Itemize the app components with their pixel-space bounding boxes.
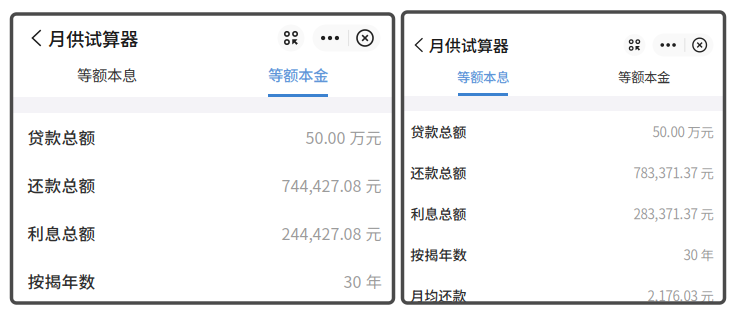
button[interactable]: 按揭年数 xyxy=(11,257,393,305)
button[interactable]: 利息总额 xyxy=(11,209,393,257)
staticText: 月供试算器 xyxy=(48,25,138,51)
button[interactable]: 等额本金 xyxy=(563,60,724,96)
staticText: 等额本金 xyxy=(268,63,328,86)
staticText: 30 年 xyxy=(343,269,381,293)
staticText: 月均还款 xyxy=(410,285,466,306)
staticText: 283,371.37 元 xyxy=(633,204,713,223)
staticText: 50.00 万元 xyxy=(305,125,381,149)
button[interactable]: 等额本息 xyxy=(11,55,202,97)
button[interactable]: 贷款总额 xyxy=(402,111,724,152)
button[interactable]: 月均还款 xyxy=(402,275,724,313)
staticText: 贷款总额 xyxy=(410,121,466,142)
button[interactable]: Mini program menu xyxy=(623,34,645,56)
staticText: 等额本息 xyxy=(457,67,509,86)
button[interactable]: Mini program menu xyxy=(277,24,304,51)
staticText: 利息总额 xyxy=(410,203,466,224)
staticText: 利息总额 xyxy=(27,221,95,245)
button[interactable]: 月供试算器 xyxy=(11,22,138,54)
staticText: 月供试算器 xyxy=(429,33,509,57)
button[interactable]: 贷款总额 xyxy=(11,113,393,161)
staticText: 744,427.08 元 xyxy=(281,173,381,197)
button[interactable]: 月供试算器 xyxy=(402,30,509,60)
staticText: 等额本息 xyxy=(77,63,137,86)
button[interactable]: 等额本金 xyxy=(202,55,393,97)
staticText: 贷款总额 xyxy=(27,125,95,149)
staticText: 2,176.03 元 xyxy=(647,286,713,305)
button[interactable]: 还款总额 xyxy=(11,161,393,209)
button[interactable]: Close xyxy=(349,24,381,51)
button[interactable]: More xyxy=(652,33,684,56)
button[interactable]: More xyxy=(312,24,348,51)
button[interactable]: 按揭年数 xyxy=(402,234,724,275)
staticText: 按揭年数 xyxy=(27,269,95,293)
staticText: 还款总额 xyxy=(410,162,466,183)
staticText: 按揭年数 xyxy=(410,244,466,265)
staticText: 783,371.37 元 xyxy=(633,163,713,182)
staticText: 50.00 万元 xyxy=(652,122,713,141)
button[interactable]: 利息总额 xyxy=(402,193,724,234)
staticText: 还款总额 xyxy=(27,173,95,197)
staticText: 30 年 xyxy=(683,245,713,264)
button[interactable]: 等额本息 xyxy=(402,60,563,96)
button[interactable]: 还款总额 xyxy=(402,152,724,193)
staticText: 等额本金 xyxy=(618,67,670,86)
staticText: 244,427.08 元 xyxy=(281,221,381,245)
button[interactable]: Close xyxy=(685,33,714,56)
